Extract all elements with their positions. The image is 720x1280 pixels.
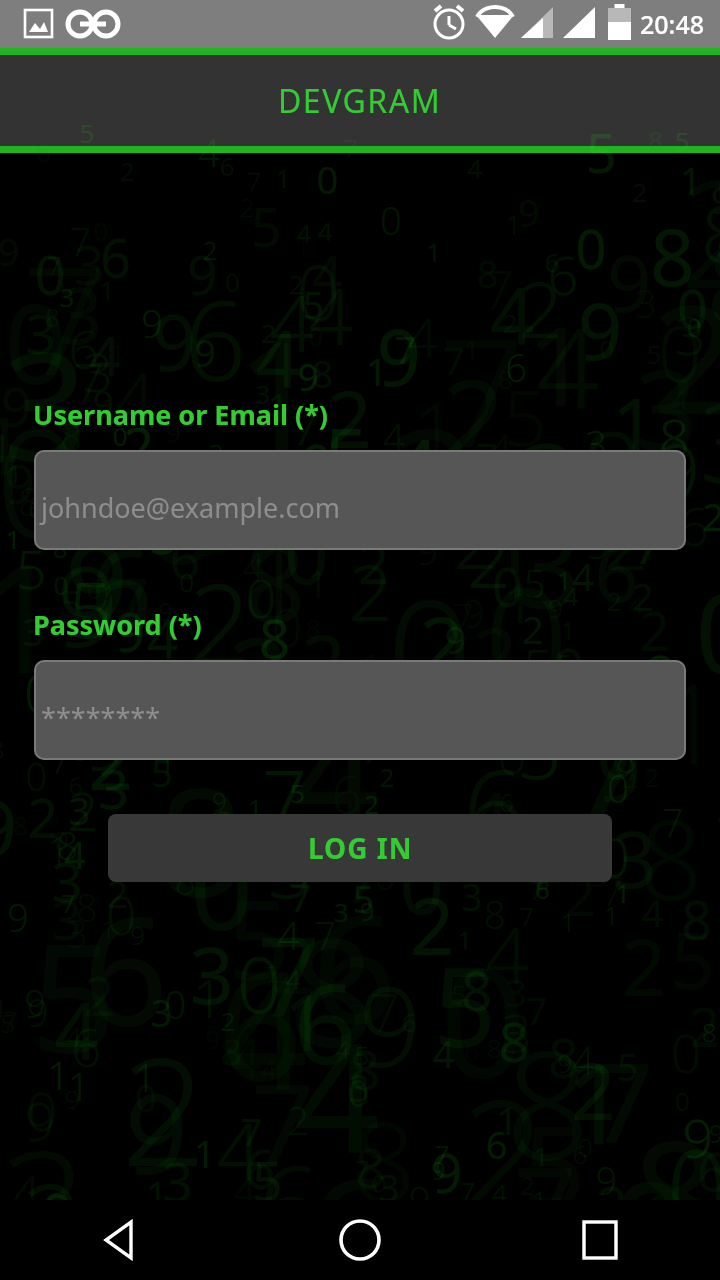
button[interactable]: johndoe@example.com (34, 450, 686, 550)
button[interactable]: Back (0, 1200, 240, 1280)
staticText: 20:48 (640, 7, 705, 41)
staticText: ******** (41, 699, 161, 736)
staticText: johndoe@example.com (41, 489, 341, 526)
button[interactable]: Home (240, 1200, 480, 1280)
button[interactable]: Recent apps (480, 1200, 720, 1280)
button[interactable]: LOG IN (108, 814, 612, 882)
staticText: Password (*) (33, 606, 202, 643)
button[interactable]: ******** (34, 660, 686, 760)
staticText: Username or Email (*) (33, 396, 329, 433)
staticText: DEVGRAM (278, 79, 442, 123)
staticText: LOG IN (308, 829, 413, 867)
